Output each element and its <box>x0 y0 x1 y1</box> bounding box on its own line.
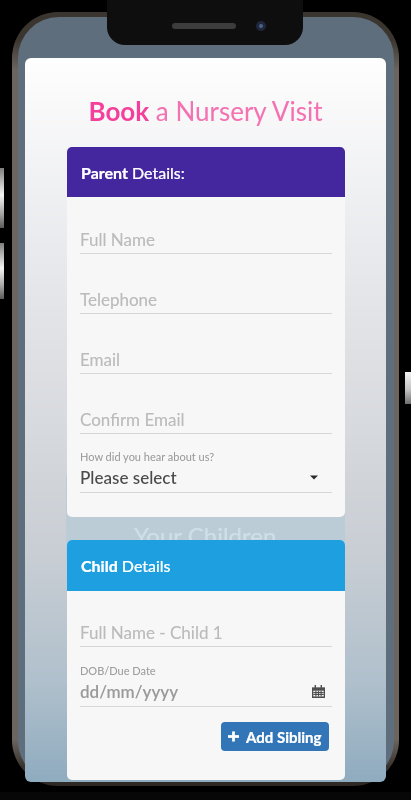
button[interactable]: Full Name <box>80 229 332 254</box>
staticText: Parent Details: <box>81 163 185 182</box>
button[interactable]: DOB/Due Date <box>80 664 332 707</box>
button[interactable]: Add Sibling <box>221 722 329 751</box>
staticText: Book a Nursery Visit <box>88 95 323 126</box>
staticText: Add Sibling <box>246 728 322 746</box>
button[interactable]: Child Details <box>67 540 345 591</box>
other: Pick a date <box>312 685 325 698</box>
staticText: Telephone <box>80 289 158 309</box>
staticText: Full Name <box>80 229 155 249</box>
button[interactable]: Full Name - Child 1 <box>80 622 332 647</box>
button[interactable]: Parent Details: <box>67 147 345 197</box>
staticText: DOB/Due Date <box>80 664 156 677</box>
button[interactable]: How did you hear about us? <box>80 450 332 493</box>
button[interactable]: Confirm Email <box>80 409 332 434</box>
staticText: How did you hear about us? <box>80 450 215 463</box>
staticText: Please select <box>80 467 177 487</box>
staticText: Your Children <box>134 521 277 550</box>
staticText: Child Details <box>81 556 171 575</box>
staticText: dd/mm/yyyy <box>80 681 179 701</box>
button[interactable]: Telephone <box>80 289 332 314</box>
staticText: Confirm Email <box>80 409 185 429</box>
staticText: Email <box>80 349 121 369</box>
button[interactable]: Email <box>80 349 332 374</box>
staticText: Full Name - Child 1 <box>80 622 223 642</box>
